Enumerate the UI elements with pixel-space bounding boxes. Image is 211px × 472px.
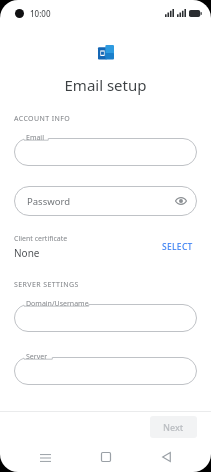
staticText: Password (27, 195, 70, 208)
button[interactable]: Home (91, 442, 121, 472)
button[interactable]: Next (150, 416, 197, 438)
staticText: Next (163, 421, 184, 433)
staticText: SERVER SETTINGS (14, 280, 211, 290)
staticText: SELECT (162, 241, 193, 253)
button[interactable]: Password (14, 186, 197, 216)
staticText: 10:00 (30, 8, 51, 19)
staticText: Email setup (0, 75, 211, 95)
staticText: Client certificate (14, 234, 68, 244)
button[interactable]: Show password (173, 193, 189, 209)
staticText: Email (26, 133, 44, 143)
button[interactable]: Back (151, 442, 181, 472)
button[interactable]: Recent apps (30, 442, 60, 472)
staticText: None (14, 246, 40, 260)
button[interactable]: Domain/Username (14, 299, 197, 332)
button[interactable]: SELECT (158, 237, 197, 257)
staticText: ACCOUNT INFO (14, 114, 211, 124)
button[interactable]: Server (14, 352, 197, 385)
button[interactable]: Email (14, 133, 197, 166)
staticText: Server (26, 352, 48, 362)
staticText: Domain/Username (26, 299, 89, 309)
